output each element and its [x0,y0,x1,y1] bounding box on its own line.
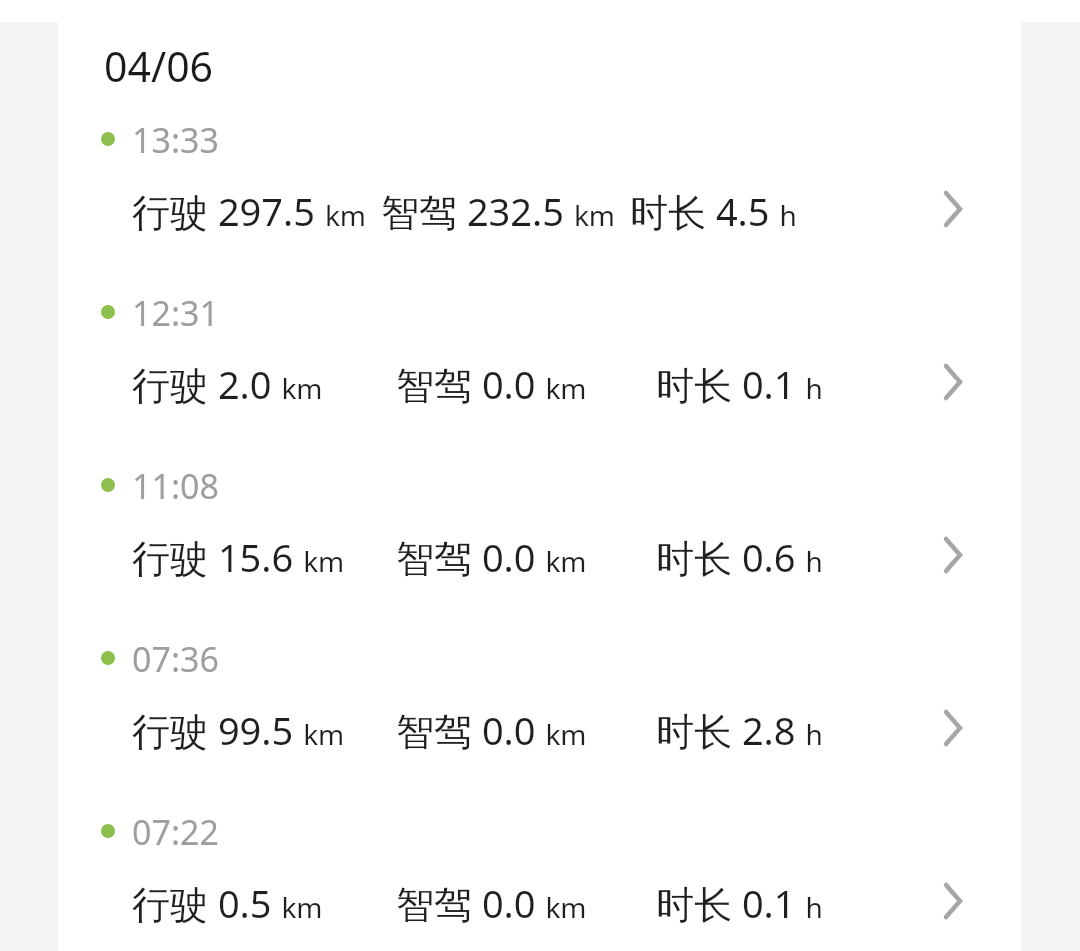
button[interactable]: View trip details [920,869,984,933]
staticText: 12:31 [132,290,219,336]
staticText: 行驶 297.5 km [132,185,367,237]
button[interactable] [58,786,1021,936]
staticText: 时长 0.6 h [656,531,823,583]
button[interactable] [58,267,1021,417]
button[interactable] [58,613,1021,763]
staticText: 11:08 [132,463,219,509]
staticText: 时长 0.1 h [656,358,823,410]
staticText: 时长 4.5 h [630,185,797,237]
button[interactable]: View trip details [920,177,984,241]
button[interactable] [58,440,1021,590]
staticText: 行驶 2.0 km [132,358,323,410]
staticText: 智驾 232.5 km [381,185,616,237]
staticText: 04/06 [104,38,214,94]
staticText: 时长 0.1 h [656,877,823,929]
staticText: 智驾 0.0 km [396,358,587,410]
button[interactable]: View trip details [920,350,984,414]
staticText: 行驶 99.5 km [132,704,345,756]
staticText: 07:36 [132,636,219,682]
button[interactable] [58,94,1021,244]
button[interactable]: View trip details [920,696,984,760]
staticText: 07:22 [132,809,219,855]
staticText: 智驾 0.0 km [396,877,587,929]
staticText: 智驾 0.0 km [396,704,587,756]
staticText: 行驶 0.5 km [132,877,323,929]
button[interactable]: View trip details [920,523,984,587]
staticText: 时长 2.8 h [656,704,823,756]
staticText: 行驶 15.6 km [132,531,345,583]
staticText: 智驾 0.0 km [396,531,587,583]
staticText: 13:33 [132,117,219,163]
